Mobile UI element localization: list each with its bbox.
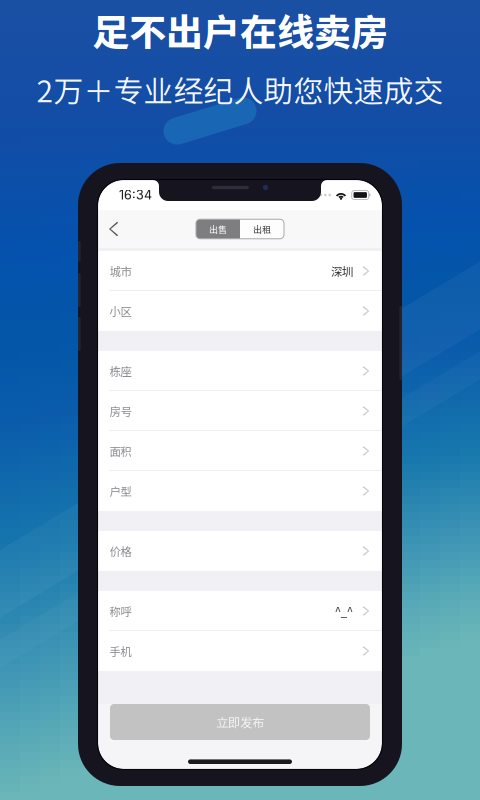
staticText: 出租 xyxy=(253,222,271,235)
staticText: 16:34 xyxy=(119,187,152,203)
button[interactable]: 称呼 xyxy=(98,591,382,631)
button[interactable]: 出售 xyxy=(196,219,240,239)
staticText: 房号 xyxy=(109,403,131,419)
button[interactable]: 小区 xyxy=(98,291,382,331)
staticText: 称呼 xyxy=(109,603,131,619)
button[interactable]: 手机 xyxy=(98,631,382,671)
staticText: 户型 xyxy=(109,483,131,499)
button[interactable]: 立即发布 xyxy=(110,704,370,740)
staticText: ^_^ xyxy=(335,603,353,619)
button[interactable]: 城市 xyxy=(98,251,382,291)
button[interactable]: 面积 xyxy=(98,431,382,471)
staticText: 小区 xyxy=(109,303,131,319)
staticText: 栋座 xyxy=(109,363,131,379)
staticText: 出售 xyxy=(209,222,227,235)
staticText: 2万＋专业经纪人助您快速成交 xyxy=(36,68,443,111)
staticText: 深圳 xyxy=(331,263,353,279)
staticText: 面积 xyxy=(109,443,131,459)
button[interactable]: Back xyxy=(109,210,143,248)
staticText: 手机 xyxy=(109,643,131,659)
staticText: 立即发布 xyxy=(216,713,264,731)
button[interactable]: 房号 xyxy=(98,391,382,431)
button[interactable]: 户型 xyxy=(98,471,382,511)
button[interactable]: 价格 xyxy=(98,531,382,571)
staticText: 城市 xyxy=(109,263,131,279)
staticText: 价格 xyxy=(109,543,131,559)
button[interactable]: 栋座 xyxy=(98,351,382,391)
button[interactable]: 出租 xyxy=(240,219,284,239)
staticText: 足不出户在线卖房 xyxy=(92,3,388,57)
